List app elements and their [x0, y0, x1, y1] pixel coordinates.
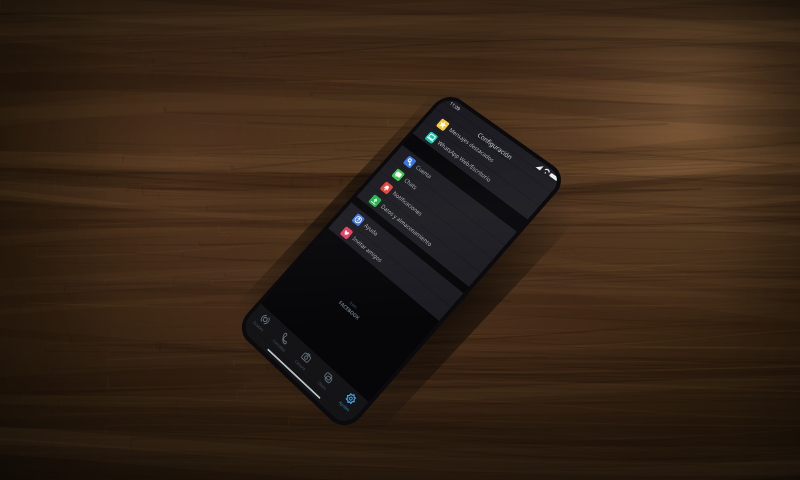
button[interactable]: Ayuda: [340, 202, 463, 307]
staticText: Invitar amigos: [351, 235, 384, 264]
staticText: Cuenta: [414, 164, 434, 181]
staticText: Estados: [252, 320, 265, 333]
staticText: Notificaciones: [391, 190, 424, 218]
button[interactable]: Cámara: [285, 341, 323, 379]
button[interactable]: Estados: [245, 303, 281, 340]
staticText: Ayuda: [362, 222, 380, 238]
staticText: Configuración: [476, 131, 514, 161]
staticText: Datos y almacenamiento: [379, 203, 434, 248]
button[interactable]: Chats: [307, 361, 346, 400]
staticText: Chats: [317, 380, 328, 391]
button[interactable]: Llamadas: [265, 322, 302, 359]
button[interactable]: Cuenta: [391, 145, 517, 246]
staticText: Llamadas: [272, 338, 287, 353]
staticText: Cámara: [293, 358, 307, 372]
button[interactable]: Ajustes: [329, 381, 369, 421]
staticText: FACEBOOK: [338, 299, 362, 321]
staticText: Ajustes: [338, 399, 351, 413]
staticText: WhatsApp Web/Escritorio: [436, 139, 493, 184]
button[interactable]: Notificaciones: [368, 171, 493, 273]
button[interactable]: Datos y almacenamiento: [356, 183, 481, 287]
staticText: Chats: [402, 177, 419, 191]
button[interactable]: Invitar amigos: [328, 215, 451, 321]
staticText: 11:09: [448, 100, 463, 112]
button[interactable]: Chats: [379, 158, 505, 259]
staticText: from: [348, 300, 359, 310]
button[interactable]: Mensajes destacados: [424, 108, 552, 206]
button[interactable]: WhatsApp Web/Escritorio: [412, 121, 540, 220]
staticText: Mensajes destacados: [447, 126, 496, 164]
